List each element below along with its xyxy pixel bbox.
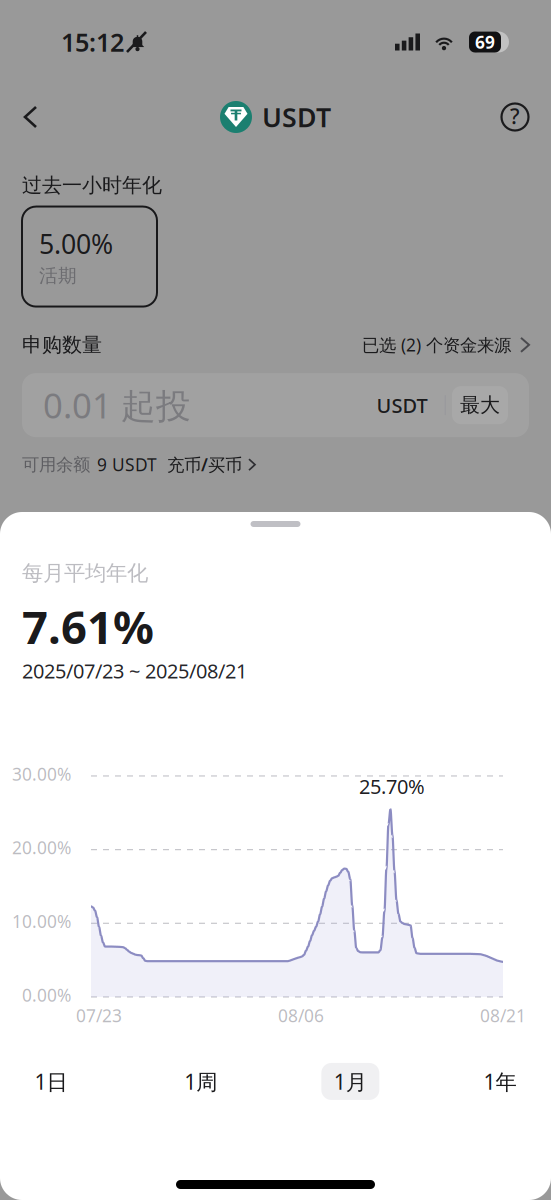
staticText: 9 USDT [97, 453, 157, 476]
staticText: 08/06 [278, 1004, 324, 1027]
button[interactable]: 1年 [471, 1063, 529, 1100]
staticText: USDT [262, 99, 331, 135]
button[interactable]: 1日 [22, 1063, 80, 1100]
staticText: 充币/买币 [167, 453, 242, 476]
button[interactable]: Help [489, 91, 541, 143]
button[interactable]: Back [8, 92, 53, 142]
staticText: 07/23 [76, 1004, 122, 1027]
staticText: 69 [475, 30, 495, 53]
button[interactable]: 最大 [452, 386, 508, 424]
staticText: USDT [377, 392, 428, 418]
staticText: 7.61% [22, 596, 154, 656]
staticText: 08/21 [480, 1004, 526, 1027]
staticText: 10.00% [12, 910, 71, 933]
staticText: 已选 (2) 个资金来源 [362, 333, 511, 356]
button[interactable]: 1月 [321, 1063, 379, 1100]
button[interactable]: 1周 [172, 1063, 230, 1100]
staticText: 活期 [39, 264, 77, 287]
staticText: 1周 [184, 1067, 217, 1096]
staticText: 25.70% [359, 773, 425, 800]
staticText: 1月 [334, 1067, 367, 1096]
staticText: 每月平均年化 [22, 560, 148, 586]
staticText: 30.00% [12, 762, 71, 785]
staticText: 1日 [34, 1067, 67, 1096]
staticText: 可用余额 [22, 454, 90, 475]
staticText: ? [510, 102, 520, 130]
staticText: 0.00% [22, 983, 71, 1006]
staticText: 过去一小时年化 [22, 173, 162, 198]
staticText: 5.00% [39, 226, 113, 261]
staticText: 1年 [483, 1067, 516, 1096]
staticText: 申购数量 [22, 333, 102, 357]
button[interactable]: 可用余额 [22, 437, 255, 476]
staticText: 最大 [460, 393, 500, 417]
staticText: 20.00% [12, 836, 71, 859]
button[interactable]: 已选 (2) 个资金来源 [362, 333, 529, 356]
staticText: 2025/07/23 ~ 2025/08/21 [22, 657, 247, 684]
staticText: 15:12 [61, 25, 124, 59]
staticText: 0.01 起投 [43, 382, 191, 428]
